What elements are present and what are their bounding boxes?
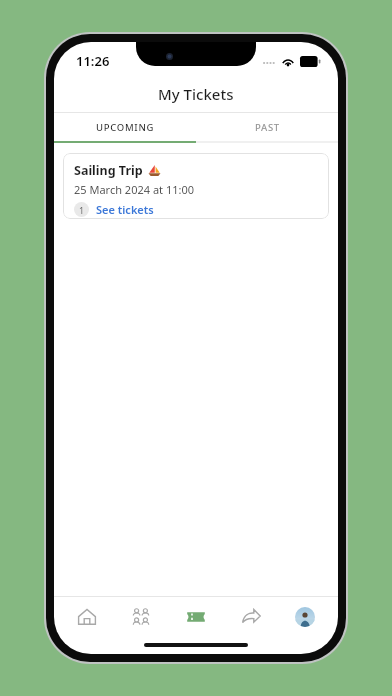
button[interactable]: UPCOMING: [54, 113, 196, 141]
button[interactable]: Tickets: [174, 597, 218, 637]
staticText: Sailing Trip: [74, 162, 143, 179]
button[interactable]: Share: [229, 597, 273, 637]
staticText: My Tickets: [158, 84, 234, 104]
button[interactable]: PAST: [196, 113, 338, 141]
button[interactable]: Home: [65, 597, 109, 637]
button[interactable]: Groups: [119, 597, 163, 637]
staticText: 1: [79, 204, 85, 216]
staticText: 11:26: [76, 52, 110, 70]
staticText: 25 March 2024 at 11:00: [74, 182, 194, 197]
button[interactable]: Sailing Trip: [63, 153, 329, 219]
staticText: See tickets: [96, 202, 154, 217]
staticText: UPCOMING: [96, 121, 155, 134]
button[interactable]: 1: [74, 202, 154, 217]
button[interactable]: Profile: [283, 597, 327, 637]
staticText: PAST: [255, 121, 280, 134]
